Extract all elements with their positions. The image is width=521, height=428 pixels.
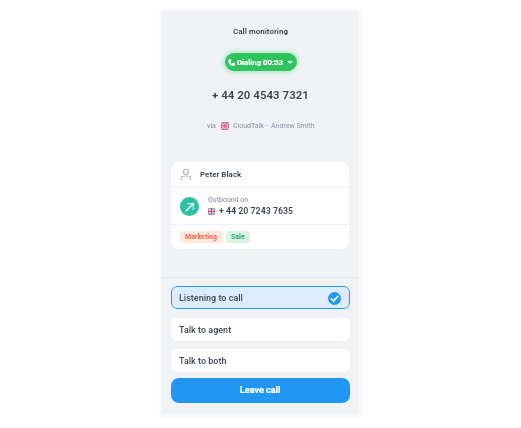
staticText: Talk to both <box>179 356 227 367</box>
button[interactable]: Leave call <box>171 378 350 403</box>
staticText: via <box>207 122 216 130</box>
staticText: Dialing 00:53 <box>237 58 284 67</box>
staticText: Peter Black <box>200 170 242 179</box>
staticText: Listening to call <box>179 293 243 304</box>
button[interactable]: Listening to call <box>171 286 350 309</box>
staticText: + 44 20 7243 7635 <box>219 206 294 216</box>
staticText: Outbound on <box>208 196 249 204</box>
staticText: Marketing <box>185 233 218 241</box>
staticText: Sale <box>231 233 245 241</box>
button[interactable]: Peter Black <box>171 162 349 187</box>
button[interactable]: Talk to both <box>171 349 350 372</box>
staticText: + 44 20 4543 7321 <box>162 88 359 101</box>
staticText: CloudTalk - Andrew Smith <box>233 122 315 130</box>
button[interactable]: Talk to agent <box>171 318 350 341</box>
button[interactable]: Outbound on <box>171 188 349 224</box>
staticText: Leave call <box>240 385 281 396</box>
staticText: Talk to agent <box>179 325 232 336</box>
staticText: Call monitoring <box>162 27 359 36</box>
button[interactable]: Dialing 00:53 <box>225 53 297 71</box>
